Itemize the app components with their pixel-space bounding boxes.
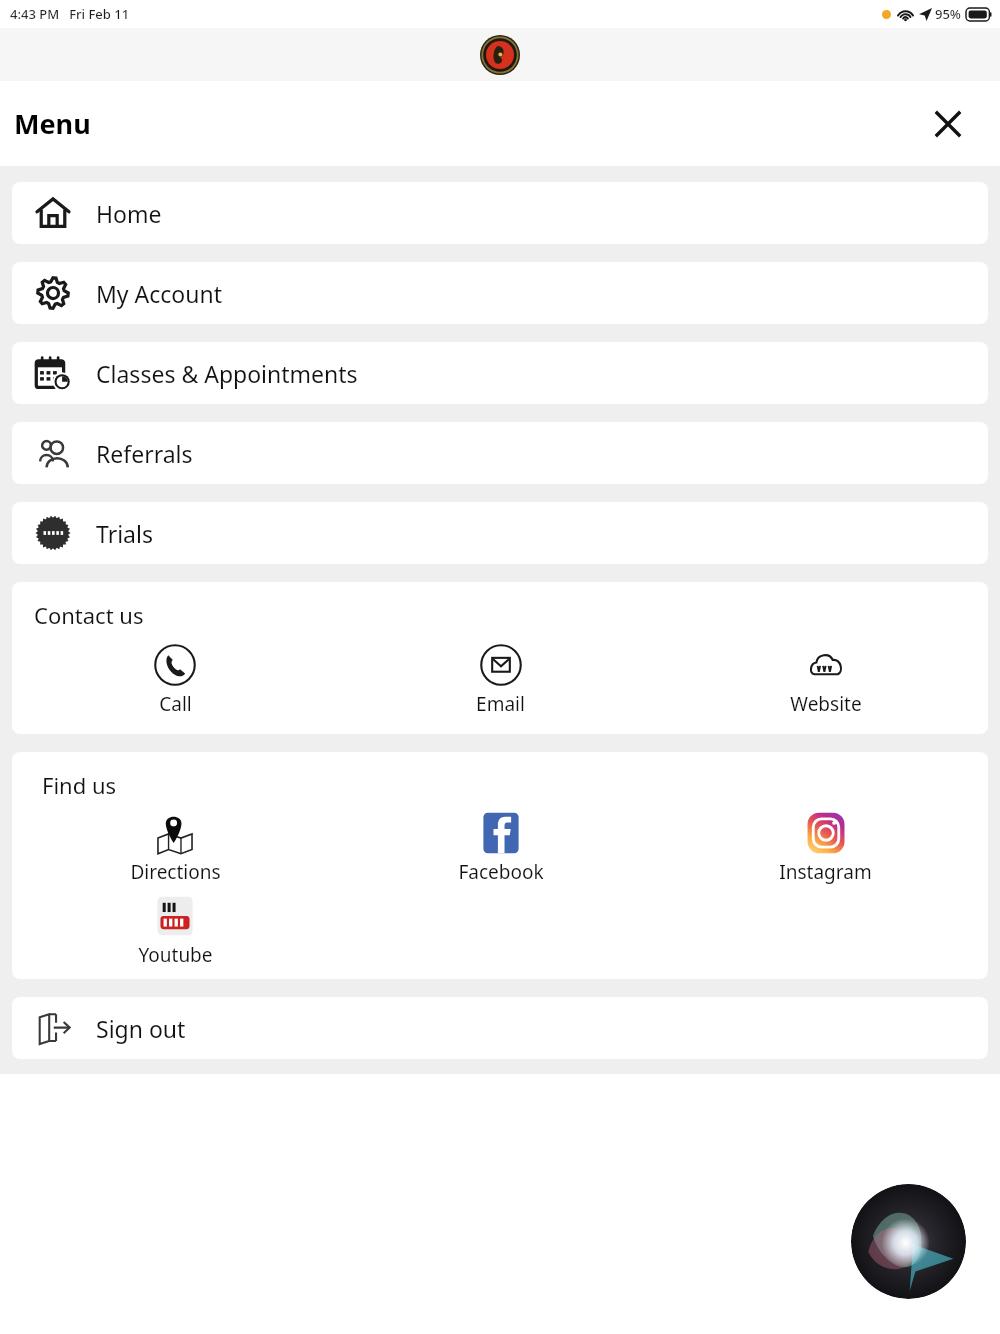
staticText: Find us [42,770,117,800]
button[interactable]: Email [338,642,663,717]
staticText: Facebook [458,859,544,885]
button[interactable]: Website [663,642,988,717]
button[interactable]: Directions [12,810,338,885]
staticText: Instagram [779,859,872,885]
staticText: Contact us [34,600,144,630]
staticText: Call [159,691,192,717]
button[interactable]: Classes & Appointments [12,342,988,404]
staticText: Youtube [138,942,213,968]
staticText: Referrals [96,438,193,469]
button[interactable]: Call [12,642,338,717]
staticText: Email [476,691,525,717]
staticText: Website [790,691,862,717]
button[interactable]: Sign out [12,997,988,1059]
staticText: Menu [14,105,91,142]
button[interactable]: Youtube [12,893,338,968]
staticText: 4:43 PM Fri Feb 11 [10,5,130,23]
button[interactable]: Trials [12,502,988,564]
staticText: Trials [96,518,153,549]
button[interactable]: Home [12,182,988,244]
staticText: Home [96,198,162,229]
staticText: Classes & Appointments [96,358,358,389]
staticText: Sign out [96,1013,186,1044]
button[interactable]: Referrals [12,422,988,484]
button[interactable]: My Account [12,262,988,324]
staticText: Directions [130,859,221,885]
button[interactable]: Close [926,102,970,146]
button[interactable]: Instagram [663,810,988,885]
staticText: My Account [96,278,222,309]
button[interactable]: Facebook [338,810,663,885]
staticText: 95% [935,5,961,23]
button[interactable]: Siri [851,1184,966,1299]
